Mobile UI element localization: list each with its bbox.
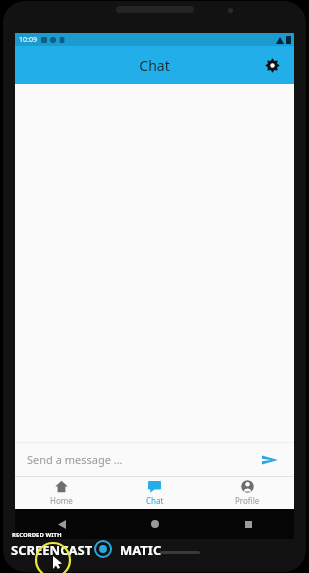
button[interactable]: Send a message ...: [15, 443, 294, 476]
button[interactable]: Back: [53, 515, 71, 533]
button[interactable]: Recent apps: [239, 515, 257, 533]
staticText: MATIC: [120, 541, 162, 559]
staticText: Chat: [146, 495, 164, 506]
button[interactable]: Home: [15, 477, 108, 509]
button[interactable]: Send: [258, 448, 282, 472]
staticText: Send a message ...: [27, 452, 258, 467]
button[interactable]: Settings: [258, 51, 286, 79]
staticText: Home: [50, 495, 73, 506]
staticText: 10:09: [19, 35, 37, 45]
button[interactable]: Home: [146, 515, 164, 533]
staticText: Profile: [235, 495, 260, 506]
staticText: Chat: [139, 56, 170, 75]
button[interactable]: Profile: [201, 477, 294, 509]
staticText: SCREENCAST: [11, 541, 93, 559]
button[interactable]: Chat: [108, 477, 201, 509]
staticText: RECORDED WITH: [12, 531, 62, 539]
